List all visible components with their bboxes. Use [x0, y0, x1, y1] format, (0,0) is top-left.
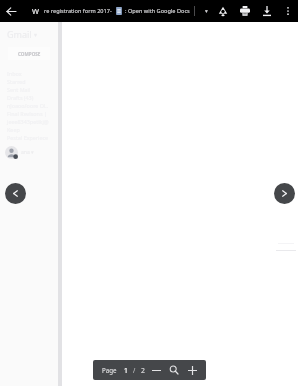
- staticText: COMPOSE: [18, 51, 41, 57]
- staticText: Gmail: [7, 28, 32, 40]
- button[interactable]: Next page: [274, 183, 295, 204]
- button[interactable]: Gmail: [7, 28, 38, 40]
- button[interactable]: More: [278, 1, 298, 21]
- button[interactable]: Previous page: [5, 183, 26, 204]
- button[interactable]: Zoom in: [184, 362, 200, 378]
- button[interactable]: More options: [200, 5, 212, 17]
- staticText: 2: [141, 366, 145, 375]
- staticText: : Open with Google Docs: [125, 7, 190, 15]
- button[interactable]: Download: [256, 0, 278, 22]
- staticText: re registration form 2017-: [44, 7, 112, 15]
- staticText: ▾: [34, 31, 38, 38]
- button[interactable]: Zoom: [166, 362, 182, 378]
- staticText: /: [133, 366, 136, 374]
- staticText: 1: [124, 366, 128, 375]
- staticText: W: [32, 6, 39, 16]
- button[interactable]: Save to Drive: [212, 0, 234, 22]
- staticText: ▾: [205, 8, 208, 14]
- button[interactable]: 1: [124, 366, 128, 375]
- button[interactable]: Zoom out: [148, 362, 164, 378]
- button[interactable]: Print: [234, 0, 256, 22]
- staticText: ana ▾: [21, 149, 34, 156]
- staticText: Page: [102, 366, 117, 374]
- button[interactable]: COMPOSE: [8, 47, 50, 60]
- button[interactable]: ana ▾: [0, 144, 58, 160]
- button[interactable]: Back: [0, 0, 22, 22]
